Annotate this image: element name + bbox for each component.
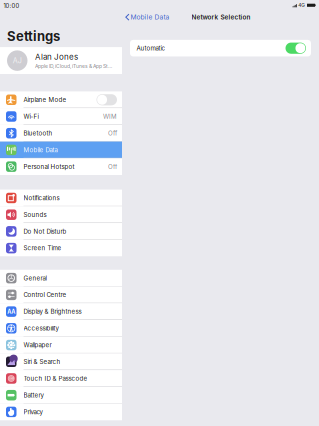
button[interactable]: Airplane Mode [0, 91, 122, 108]
button[interactable]: General [0, 270, 122, 286]
staticText: Wi-Fi [23, 113, 38, 120]
button[interactable]: Wi-Fi [0, 108, 122, 125]
button[interactable]: Bluetooth [0, 125, 122, 141]
button[interactable]: Battery [0, 387, 122, 403]
staticText: Personal Hotspot [23, 163, 74, 170]
staticText: Settings [7, 28, 60, 44]
button[interactable]: Accessibility [0, 320, 122, 337]
button[interactable]: Screen Time [0, 240, 122, 256]
staticText: Automatic [136, 44, 165, 52]
staticText: Control Centre [23, 291, 66, 299]
button[interactable]: Automatic [285, 43, 306, 54]
button[interactable]: Control Centre [0, 286, 122, 303]
staticText: WIM [103, 113, 117, 120]
button[interactable]: Touch ID & Passcode [0, 370, 122, 387]
staticText: General [23, 274, 46, 282]
staticText: 10:00 [3, 2, 19, 9]
staticText: Privacy [23, 408, 42, 416]
staticText: Network Selection [192, 13, 251, 21]
staticText: Notifications [23, 194, 59, 202]
staticText: Touch ID & Passcode [23, 375, 87, 382]
staticText: Mobile Data [131, 13, 170, 21]
button[interactable]: Wallpaper [0, 337, 122, 353]
button[interactable]: Do Not Disturb [0, 223, 122, 240]
staticText: Off [108, 129, 117, 137]
button[interactable]: Mobile Data [122, 12, 170, 23]
staticText: 4G [298, 2, 305, 8]
button[interactable]: Privacy [0, 403, 122, 420]
staticText: Airplane Mode [23, 96, 66, 103]
button[interactable]: Notifications [0, 190, 122, 206]
staticText: Bluetooth [23, 129, 52, 137]
button[interactable]: Siri & Search [0, 353, 122, 370]
staticText: AJ [13, 56, 22, 65]
staticText: Do Not Disturb [23, 228, 66, 235]
staticText: Apple ID, iCloud, iTunes & App St… [35, 63, 112, 69]
staticText: Alan Jones [35, 52, 78, 62]
staticText: Battery [23, 391, 43, 399]
staticText: Siri & Search [23, 358, 60, 365]
staticText: Screen Time [23, 244, 61, 252]
button[interactable]: Mobile Data [0, 142, 122, 158]
staticText: AA [7, 308, 15, 315]
button[interactable]: AJ [0, 47, 122, 74]
button[interactable]: Sounds [0, 206, 122, 223]
staticText: Display & Brightness [23, 308, 81, 315]
staticText: Accessibility [23, 325, 58, 332]
staticText: Sounds [23, 211, 46, 218]
staticText: Off [108, 163, 117, 170]
button[interactable]: AA [0, 303, 122, 320]
button[interactable]: Personal Hotspot [0, 158, 122, 175]
staticText: Wallpaper [23, 341, 51, 349]
staticText: Mobile Data [23, 146, 57, 154]
